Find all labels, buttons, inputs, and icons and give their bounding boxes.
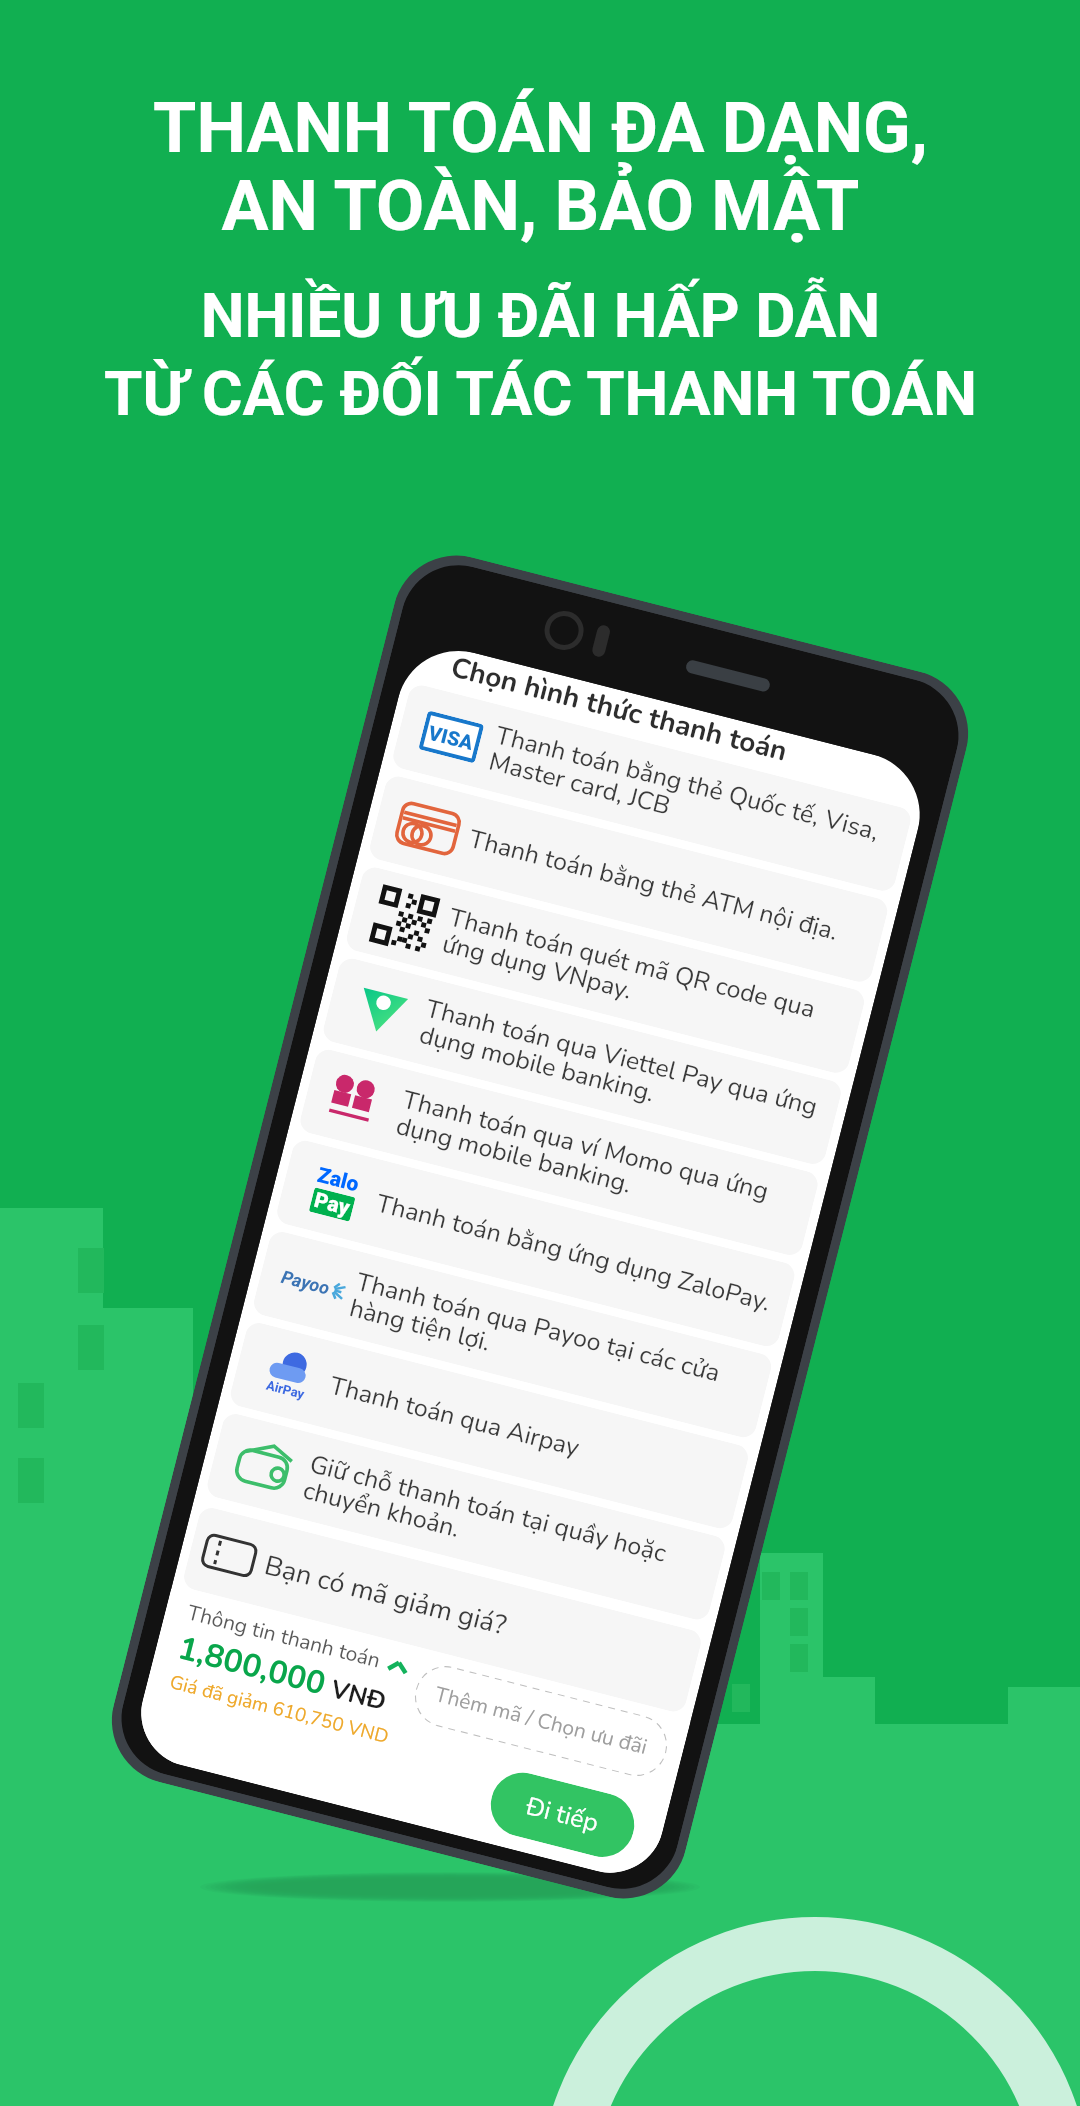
staticText: Thông tin thanh toán <box>184 1598 383 1675</box>
button[interactable]: Đi tiếp <box>484 1766 641 1864</box>
staticText: Chọn hình thức thanh toán <box>447 648 792 771</box>
button[interactable]: Thanh toán quét mã QR code qua ứng dụng … <box>334 858 877 1082</box>
staticText: Giữ chỗ thanh toán tại quầy hoặc chuyển … <box>300 1447 670 1597</box>
staticText: VNĐ <box>327 1672 390 1719</box>
staticText: Thanh toán qua ví Momo qua ứng dụng mobi… <box>392 1083 773 1235</box>
button[interactable]: Zalo <box>264 1132 807 1355</box>
button[interactable]: Thanh toán qua Viettel Pay qua ứng dụng … <box>311 950 853 1173</box>
staticText: 1,800,000 <box>173 1626 331 1706</box>
staticText: Thêm mã / Chọn ưu đãi <box>432 1680 650 1762</box>
staticText: Thanh toán qua Payoo tại các cửa hàng ti… <box>346 1265 723 1416</box>
button[interactable]: Mã giảm giá <box>181 1505 704 1714</box>
staticText: Payoo <box>279 1266 332 1299</box>
other: Mã giảm giá <box>201 1534 257 1577</box>
staticText: NHIỀU ƯU ĐÃI HẤP DẪN TỪ CÁC ĐỐI TÁC THAN… <box>104 279 977 430</box>
staticText: Thanh toán bằng ứng dụng ZaloPay. <box>373 1186 774 1320</box>
button[interactable]: Payoo <box>241 1223 784 1446</box>
staticText: VISA <box>426 721 476 754</box>
staticText: Thanh toán quét mã QR code qua ứng dụng … <box>439 901 819 1053</box>
staticText: Thanh toán bằng thẻ ATM nội địa. <box>466 822 842 949</box>
staticText: Giá đã giảm 610,750 VND <box>167 1669 391 1750</box>
staticText: Pay <box>312 1188 353 1221</box>
staticText: THANH TOÁN ĐA DẠNG, AN TOÀN, BẢO MẬT <box>153 87 928 247</box>
staticText: Zalo <box>315 1163 362 1197</box>
staticText: AirPay <box>265 1378 306 1402</box>
button[interactable]: Giữ chỗ thanh toán tại quầy hoặc chuyển … <box>195 1405 737 1628</box>
staticText: Thanh toán bằng thẻ Quốc tế, Visa, Maste… <box>485 718 883 875</box>
button[interactable]: Thanh toán qua ví Momo qua ứng dụng mobi… <box>288 1041 830 1264</box>
button[interactable]: Thêm mã / Chọn ưu đãi <box>408 1660 674 1782</box>
staticText: Bạn có mã giảm giá? <box>260 1547 511 1644</box>
button[interactable]: VISA <box>381 676 923 900</box>
staticText: Thanh toán qua Viettel Pay qua ứng dụng … <box>416 992 821 1150</box>
staticText: Thanh toán qua Airpay <box>326 1369 584 1465</box>
button[interactable]: AirPay <box>218 1314 761 1537</box>
staticText: Đi tiếp <box>522 1789 603 1840</box>
button[interactable]: Thanh toán bằng thẻ ATM nội địa. <box>357 767 900 991</box>
